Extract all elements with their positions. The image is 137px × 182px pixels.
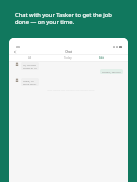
staticText: Edit bbox=[99, 56, 105, 60]
button[interactable]: Today bbox=[64, 56, 72, 60]
staticText: Today bbox=[64, 56, 72, 60]
staticText: Your Tasker will confirm the details soo… bbox=[47, 88, 95, 91]
staticText: Great, I'll bbox=[23, 79, 34, 82]
staticText: bring tools. bbox=[23, 82, 37, 85]
staticText: All bbox=[28, 56, 32, 60]
button[interactable]: All bbox=[28, 56, 32, 60]
staticText: Chat with your Tasker to get the job don… bbox=[15, 11, 137, 26]
staticText: Hi, I'm free bbox=[23, 63, 36, 66]
staticText: Friday at 10 bbox=[23, 66, 37, 69]
staticText: Perfect, see you bbox=[102, 70, 121, 73]
button[interactable]: Edit bbox=[99, 56, 105, 60]
button[interactable]: Back bbox=[13, 50, 17, 54]
staticText: Chat bbox=[9, 50, 128, 54]
